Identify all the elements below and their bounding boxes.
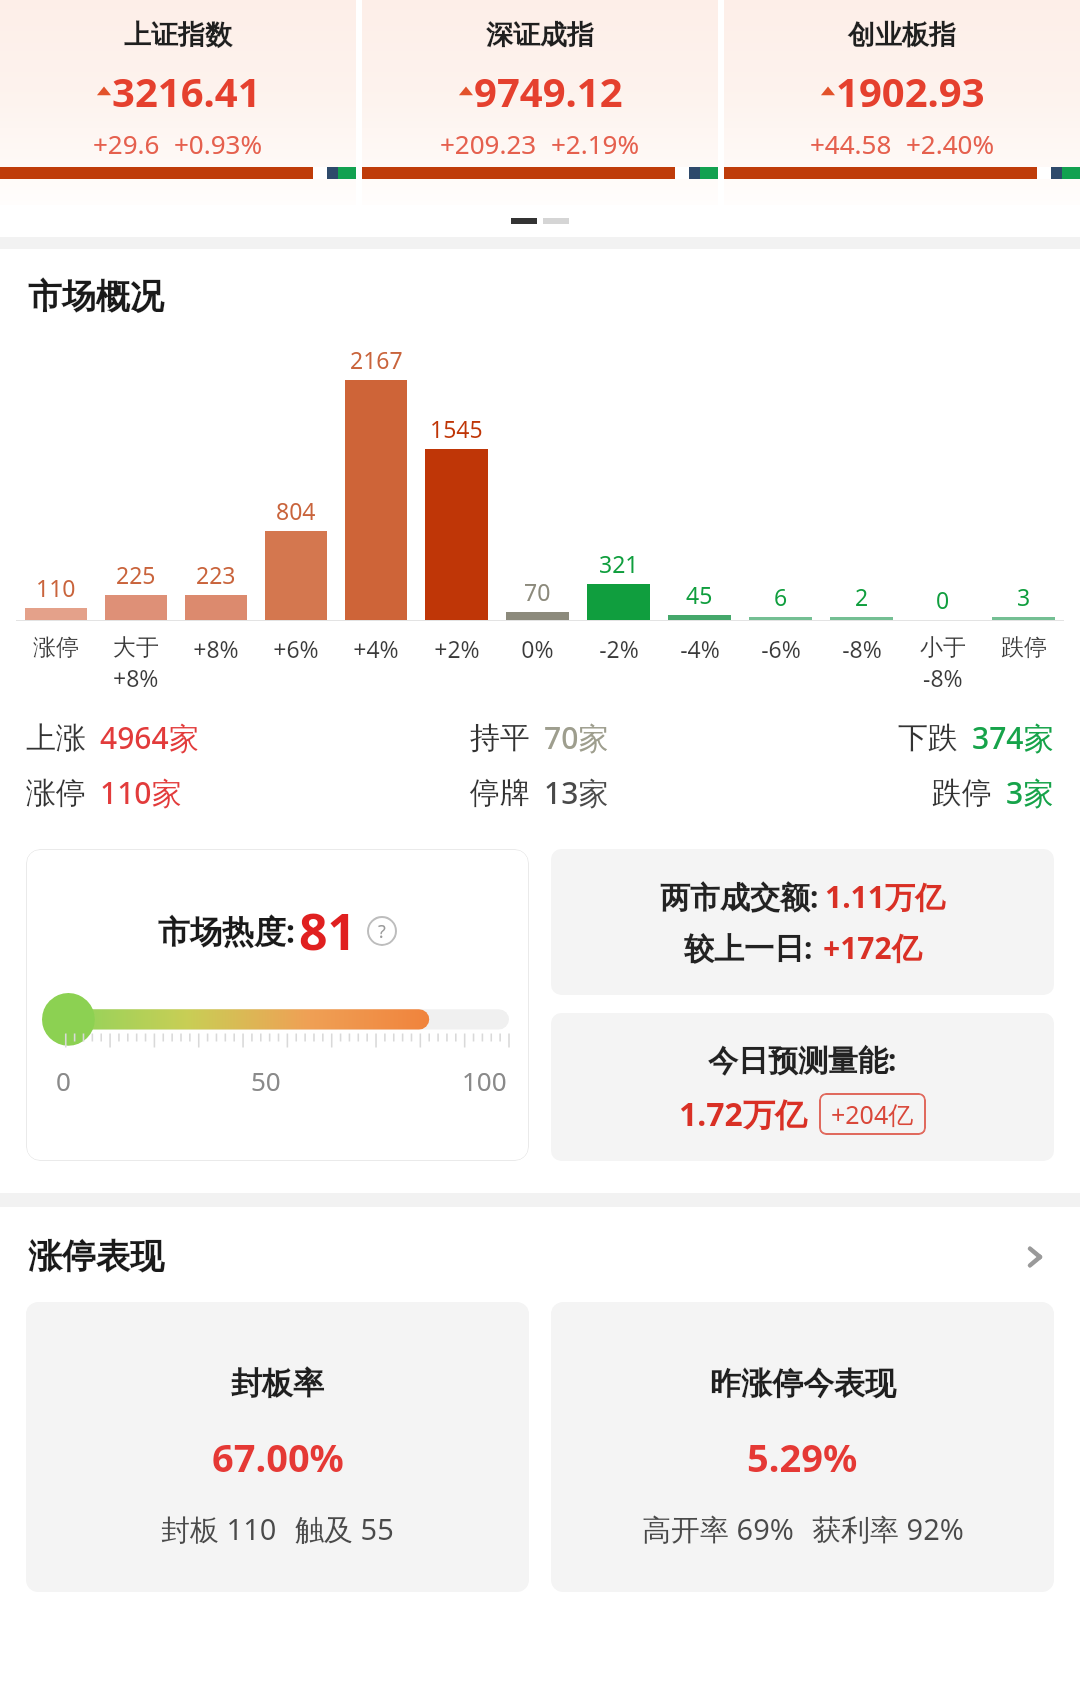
staticText: 涨停表现 bbox=[28, 1235, 164, 1278]
staticText: +2.40% bbox=[906, 126, 995, 161]
staticText: 持平 bbox=[470, 719, 530, 757]
staticText: 2 bbox=[855, 581, 869, 612]
button[interactable]: 深证成指 bbox=[362, 0, 718, 205]
staticText: -8% bbox=[923, 662, 963, 693]
staticText: 3 bbox=[1017, 581, 1031, 612]
staticText: +2.19% bbox=[551, 126, 640, 161]
staticText: +44.58 bbox=[810, 126, 892, 161]
staticText: 70家 bbox=[544, 717, 609, 758]
staticText: ? bbox=[378, 919, 386, 944]
staticText: +4% bbox=[353, 633, 399, 664]
other: 查看更多 bbox=[1018, 1240, 1052, 1274]
staticText: 封板 110 bbox=[161, 1509, 277, 1549]
staticText: 321 bbox=[599, 548, 639, 579]
staticText: 50 bbox=[251, 1063, 281, 1098]
staticText: 较上一日: bbox=[684, 927, 813, 968]
staticText: 9749.12 bbox=[474, 64, 623, 118]
staticText: +2% bbox=[434, 633, 480, 664]
staticText: +0.93% bbox=[174, 126, 263, 161]
staticText: 0 bbox=[56, 1063, 71, 1098]
staticText: 涨停 bbox=[26, 774, 86, 812]
staticText: 2167 bbox=[350, 344, 403, 375]
button[interactable]: 创业板指 bbox=[724, 0, 1080, 205]
staticText: 6 bbox=[774, 581, 788, 612]
button[interactable]: 涨停表现 bbox=[28, 1235, 1052, 1278]
staticText: 触及 55 bbox=[295, 1509, 394, 1549]
staticText: 81 bbox=[299, 897, 357, 965]
staticText: +209.23 bbox=[440, 126, 537, 161]
staticText: +8% bbox=[193, 633, 239, 664]
staticText: 今日预测量能: bbox=[708, 1039, 897, 1080]
staticText: 110家 bbox=[100, 772, 182, 813]
staticText: 两市成交额: bbox=[660, 876, 819, 917]
staticText: -6% bbox=[761, 633, 801, 664]
staticText: 3家 bbox=[1006, 772, 1054, 813]
staticText: +204亿 bbox=[831, 1097, 914, 1131]
button[interactable]: 市场热度: bbox=[26, 849, 529, 1161]
staticText: 1.11万亿 bbox=[825, 876, 945, 917]
staticText: 374家 bbox=[972, 717, 1054, 758]
staticText: 4964家 bbox=[100, 717, 199, 758]
button[interactable]: 今日预测量能: bbox=[551, 1013, 1054, 1161]
staticText: 下跌 bbox=[898, 719, 958, 757]
button[interactable]: 帮助 bbox=[367, 916, 397, 946]
staticText: 涨停 bbox=[33, 633, 79, 662]
staticText: 225 bbox=[116, 559, 156, 590]
staticText: 45 bbox=[686, 579, 713, 610]
staticText: 小于 bbox=[920, 633, 966, 662]
staticText: 上证指数 bbox=[124, 18, 232, 52]
staticText: 0 bbox=[936, 584, 950, 615]
staticText: 0% bbox=[521, 633, 554, 664]
staticText: 804 bbox=[276, 495, 316, 526]
staticText: +8% bbox=[113, 662, 159, 693]
staticText: 1902.93 bbox=[836, 64, 985, 118]
staticText: 市场概况 bbox=[28, 275, 164, 318]
staticText: 70 bbox=[524, 576, 551, 607]
staticText: 获利率 92% bbox=[812, 1509, 964, 1549]
staticText: 3216.41 bbox=[112, 64, 261, 118]
staticText: 跌停 bbox=[1001, 633, 1047, 662]
staticText: 昨涨停今表现 bbox=[710, 1364, 896, 1403]
staticText: 高开率 69% bbox=[642, 1509, 794, 1549]
button[interactable]: 上证指数 bbox=[0, 0, 356, 205]
staticText: +6% bbox=[273, 633, 319, 664]
staticText: 13家 bbox=[544, 772, 609, 813]
staticText: -2% bbox=[599, 633, 639, 664]
staticText: 创业板指 bbox=[848, 18, 956, 52]
staticText: 市场热度: bbox=[158, 909, 295, 953]
staticText: 100 bbox=[462, 1063, 507, 1098]
staticText: 跌停 bbox=[932, 774, 992, 812]
staticText: 67.00% bbox=[212, 1431, 344, 1483]
staticText: 1545 bbox=[430, 413, 483, 444]
staticText: +172亿 bbox=[823, 927, 922, 968]
staticText: +29.6 bbox=[93, 126, 160, 161]
staticText: 223 bbox=[196, 559, 236, 590]
staticText: 封板率 bbox=[231, 1364, 324, 1403]
staticText: 110 bbox=[36, 572, 76, 603]
staticText: 大于 bbox=[113, 633, 159, 662]
staticText: -4% bbox=[680, 633, 720, 664]
button[interactable]: 封板率 bbox=[26, 1302, 529, 1592]
staticText: 上涨 bbox=[26, 719, 86, 757]
staticText: 停牌 bbox=[470, 774, 530, 812]
button[interactable]: 两市成交额: bbox=[551, 849, 1054, 995]
staticText: 深证成指 bbox=[486, 18, 594, 52]
button[interactable]: 昨涨停今表现 bbox=[551, 1302, 1054, 1592]
staticText: -8% bbox=[842, 633, 882, 664]
staticText: 1.72万亿 bbox=[679, 1092, 807, 1136]
staticText: 5.29% bbox=[747, 1431, 858, 1483]
